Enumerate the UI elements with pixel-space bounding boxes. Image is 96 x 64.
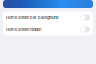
- staticText: Home screen hidden: [6, 27, 41, 32]
- button[interactable]: Home screen bar background: [3, 11, 93, 23]
- button[interactable]: Home screen hidden: [3, 23, 93, 35]
- staticText: Home screen bar background: [6, 15, 58, 20]
